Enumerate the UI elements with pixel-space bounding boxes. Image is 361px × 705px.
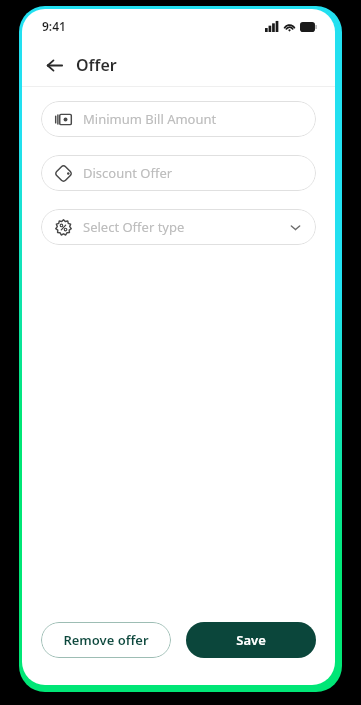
staticText: Remove offer: [63, 631, 149, 649]
staticText: Offer: [76, 54, 117, 76]
staticText: Discount Offer: [83, 164, 302, 182]
button[interactable]: Discount Offer: [41, 155, 316, 191]
staticText: 9:41: [42, 18, 66, 34]
button[interactable]: Save: [186, 622, 316, 658]
staticText: Select Offer type: [83, 218, 289, 236]
button[interactable]: Select Offer type: [41, 209, 316, 245]
button[interactable]: Remove offer: [41, 622, 171, 658]
staticText: Save: [236, 631, 266, 649]
staticText: Minimum Bill Amount: [83, 110, 302, 128]
button[interactable]: Minimum Bill Amount: [41, 101, 316, 137]
button[interactable]: Back: [40, 51, 68, 79]
